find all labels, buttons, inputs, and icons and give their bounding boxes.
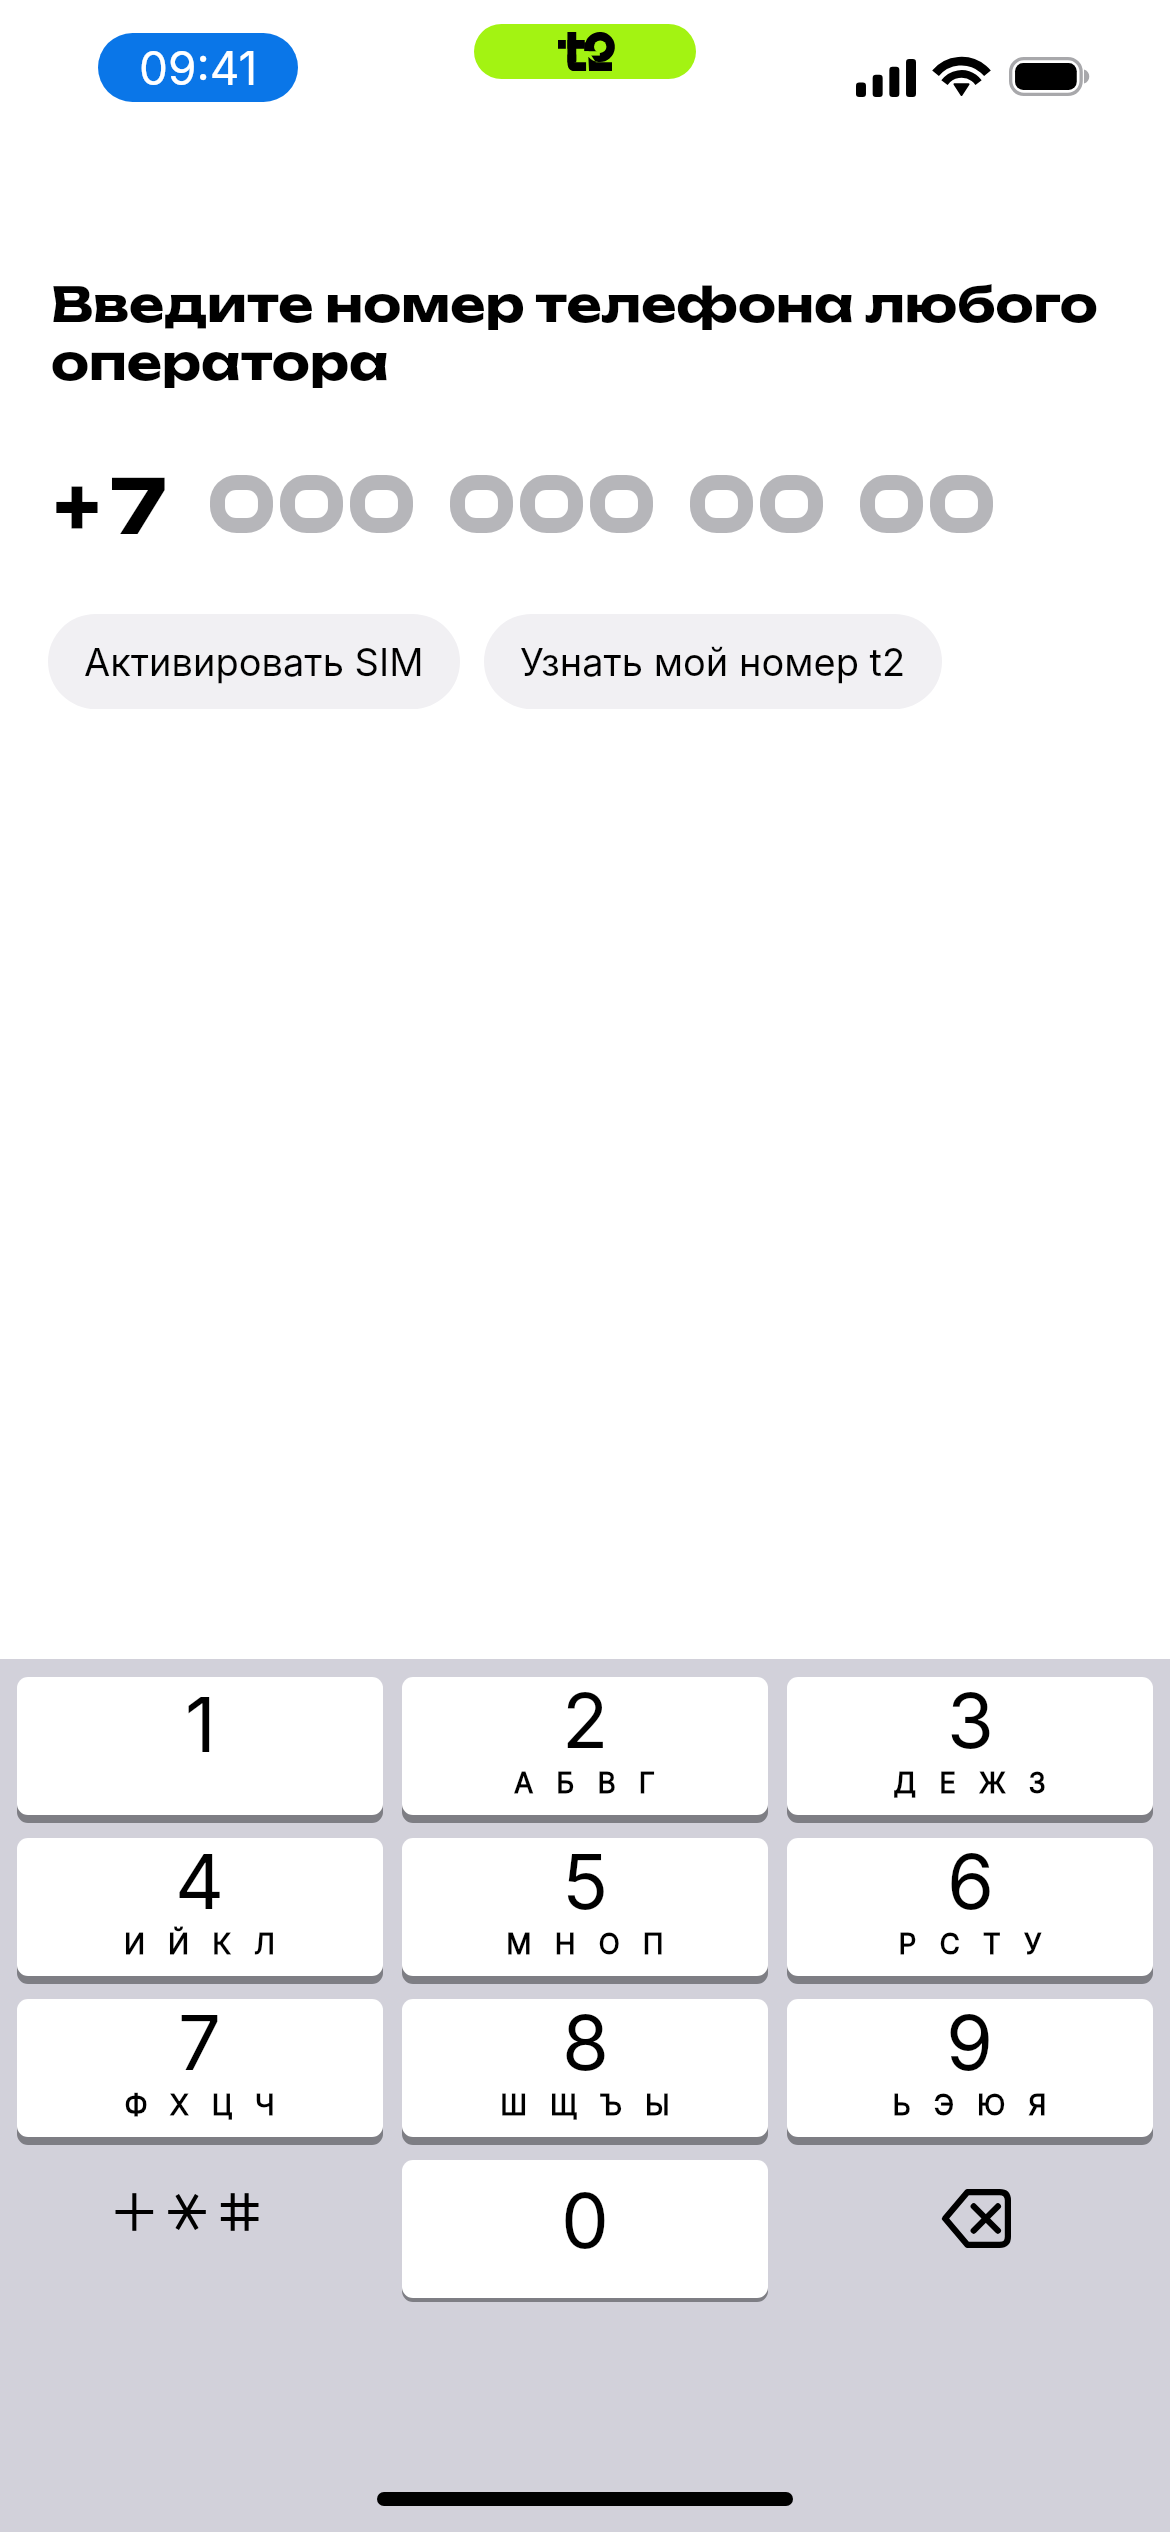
staticText: ИЙКЛ bbox=[124, 1927, 298, 1961]
staticText: 8 bbox=[562, 1999, 610, 2088]
staticText: ЬЭЮЯ bbox=[892, 2088, 1070, 2122]
button[interactable]: 2 bbox=[402, 1677, 768, 1815]
staticText: 5 bbox=[562, 1838, 609, 1927]
button[interactable]: 5 bbox=[402, 1838, 768, 1976]
button[interactable]: 7 bbox=[17, 1999, 383, 2137]
button[interactable]: 4 bbox=[17, 1838, 383, 1976]
staticText: МНОП bbox=[506, 1927, 687, 1961]
staticText: 0 bbox=[561, 2174, 609, 2266]
button[interactable]: Backspace bbox=[787, 2160, 1153, 2298]
staticText: 4 bbox=[175, 1838, 225, 1927]
staticText: Активировать SIM bbox=[84, 639, 424, 685]
button[interactable]: 8 bbox=[402, 1999, 768, 2137]
staticText: ДЕЖЗ bbox=[893, 1766, 1069, 1800]
button[interactable]: 3 bbox=[787, 1677, 1153, 1815]
button[interactable]: Узнать мой номер t2 bbox=[484, 614, 942, 709]
staticText: 9 bbox=[946, 1999, 994, 2088]
staticText: ФХЦЧ bbox=[124, 2088, 298, 2122]
button[interactable]: 1 bbox=[17, 1677, 383, 1815]
staticText: 1 bbox=[185, 1678, 216, 1770]
staticText: Узнать мой номер t2 bbox=[520, 639, 906, 685]
button[interactable]: 6 bbox=[787, 1838, 1153, 1976]
staticText: 09:41 bbox=[139, 40, 258, 96]
staticText: РСТУ bbox=[898, 1927, 1065, 1961]
button[interactable]: 0 bbox=[402, 2160, 768, 2298]
button[interactable]: Активировать SIM bbox=[48, 614, 460, 709]
button[interactable]: Plus star hash bbox=[17, 2160, 383, 2298]
staticText: ШЩЪЫ bbox=[500, 2088, 693, 2122]
staticText: Введите номер телефона любого оператора bbox=[51, 274, 1121, 391]
staticText: +7 bbox=[54, 460, 178, 552]
staticText: 7 bbox=[178, 1999, 222, 2088]
staticText: 3 bbox=[947, 1677, 994, 1766]
staticText: АБВГ bbox=[514, 1766, 678, 1800]
button[interactable]: 9 bbox=[787, 1999, 1153, 2137]
staticText: 2 bbox=[562, 1677, 609, 1766]
staticText: 6 bbox=[947, 1838, 995, 1927]
